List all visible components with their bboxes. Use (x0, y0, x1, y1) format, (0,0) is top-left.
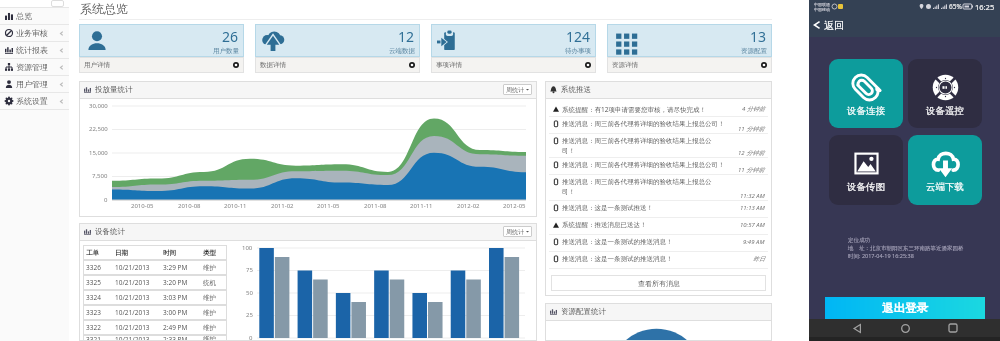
staticText: 维护 (203, 324, 216, 332)
staticText: 3322 (86, 323, 101, 332)
staticText: 用户管理 (16, 79, 48, 89)
staticText: 资源管理 (16, 62, 48, 72)
staticText: 设备连接 (847, 105, 885, 117)
button[interactable]: 系统提醒：有12项申请需要您审核，请尽快完成！ (549, 102, 768, 117)
button[interactable]: Recents (944, 319, 962, 337)
staticText: 用户详情 (84, 61, 110, 69)
staticText: 10/21/2013 (115, 263, 150, 272)
button[interactable]: 总览 (0, 8, 69, 24)
button[interactable]: 13 (607, 24, 772, 73)
button[interactable]: 资源管理 (0, 59, 69, 75)
button[interactable]: Back (848, 319, 866, 337)
staticText: 2:49 PM (163, 323, 188, 332)
staticText: 总览 (16, 11, 32, 21)
staticText: 返回 (824, 19, 844, 32)
staticText: 3:29 PM (163, 263, 188, 272)
staticText: 4 分钟前 (742, 105, 765, 113)
button[interactable]: 查看所有消息 (551, 275, 766, 291)
staticText: 资源详情 (612, 61, 638, 69)
button[interactable]: 设备传图 (829, 135, 903, 205)
button[interactable]: 推送消息：周三前各代理将详细的验收结果上报总公 司！ (549, 134, 768, 158)
staticText: 维护 (203, 294, 216, 302)
staticText: 2012-05 (503, 202, 526, 210)
staticText: 15,000 (89, 149, 108, 157)
staticText: 设备遥控 (926, 105, 964, 117)
staticText: 中国移动 (814, 7, 830, 12)
button[interactable]: 周统计 (506, 226, 529, 237)
staticText: 3325 (86, 278, 101, 287)
button[interactable]: 26 (79, 24, 244, 73)
staticText: 50 (246, 289, 253, 297)
button[interactable]: 124 (431, 24, 596, 73)
staticText: 云端下载 (926, 181, 964, 193)
button[interactable]: 12 (255, 24, 420, 73)
staticText: 推送消息：周三前各代理将详细的验收结果上报总公司！ (562, 120, 765, 128)
staticText: 16:25 (975, 2, 995, 12)
staticText: 2011-11 (410, 202, 433, 210)
staticText: 25 (246, 311, 253, 319)
staticText: 2010-05 (131, 202, 154, 210)
staticText: 系统推送 (561, 85, 591, 94)
staticText: 系统提醒：有12项申请需要您审核，请尽快完成！ (562, 105, 740, 114)
staticText: 推送消息：这是一条测试的推送消息！ (562, 238, 741, 246)
button[interactable]: 统计报表 (0, 42, 69, 58)
staticText: 数据详情 (260, 61, 286, 69)
staticText: 9:49 AM (743, 238, 765, 246)
staticText: 资源配置 (741, 47, 767, 55)
staticText: 投放量统计 (95, 85, 133, 94)
staticText: 类型 (203, 249, 216, 257)
button[interactable]: 云端下载 (908, 135, 982, 205)
staticText: 统计报表 (16, 45, 48, 55)
staticText: 时间: 2017-04-19 16:25:38 (848, 252, 914, 260)
staticText: 22,500 (89, 125, 108, 133)
button[interactable]: 推送消息：周三前各代理将详细的验收结果上报总公司！ (549, 158, 768, 175)
staticText: 周统计 (506, 86, 524, 94)
button[interactable]: 系统提醒：推送消息已送达！ (549, 218, 768, 235)
button[interactable]: 用户管理 (0, 76, 69, 92)
button[interactable]: 推送消息：周三前各代理将详细的验收结果上报总公 司！ (549, 175, 768, 201)
staticText: 10/21/2013 (115, 278, 150, 287)
staticText: 2011-05 (317, 202, 340, 210)
staticText: 11:13 AM (740, 204, 765, 212)
button[interactable]: 退出登录 (825, 297, 985, 319)
staticText: 设备统计 (95, 227, 125, 236)
button[interactable]: 推送消息：这是一条测试推送！ (549, 201, 768, 218)
button[interactable]: 推送消息：周三前各代理将详细的验收结果上报总公司！ (549, 117, 768, 134)
staticText: 10/21/2013 (115, 335, 150, 341)
button[interactable]: 设备连接 (829, 59, 903, 128)
button[interactable]: 推送消息：这是一条测试的推送消息！ (549, 235, 768, 252)
staticText: 系统设置 (16, 96, 48, 106)
staticText: 11 分钟前 (738, 166, 765, 174)
staticText: 推送消息：周三前各代理将详细的验收结果上报总公 司！ (562, 137, 765, 155)
staticText: 云端数据 (389, 47, 415, 55)
staticText: 待办事项 (565, 47, 591, 55)
button[interactable]: 推送消息：这是一条测试的推送消息！ (549, 252, 768, 269)
staticText: 10/21/2013 (115, 293, 150, 302)
staticText: 统机 (203, 279, 216, 287)
staticText: 2010-08 (178, 202, 201, 210)
staticText: 日期 (115, 249, 128, 257)
button[interactable]: 返回 (813, 13, 1000, 37)
staticText: 定位成功 (848, 237, 870, 244)
staticText: 2011-02 (271, 202, 294, 210)
button[interactable]: 周统计 (506, 84, 529, 95)
staticText: 0 (104, 196, 108, 204)
staticText: 维护 (203, 264, 216, 272)
staticText: 系统提醒：推送消息已送达！ (562, 221, 738, 229)
staticText: 2:33 PM (163, 335, 188, 341)
staticText: 维护 (203, 309, 216, 317)
staticText: 12 (398, 27, 415, 46)
staticText: 2011-08 (364, 202, 387, 210)
staticText: 13 (750, 27, 767, 46)
staticText: 7,500 (92, 172, 108, 180)
staticText: 推送消息：周三前各代理将详细的验收结果上报总公司！ (562, 161, 765, 169)
button[interactable]: 业务审核 (0, 25, 69, 41)
staticText: 3324 (86, 293, 101, 302)
button[interactable]: 系统设置 (0, 93, 69, 109)
button[interactable]: 设备遥控 (908, 59, 982, 128)
staticText: 100 (242, 244, 253, 252)
staticText: 3:00 PM (163, 308, 188, 317)
staticText: 30,000 (89, 102, 108, 110)
staticText: 3:20 PM (163, 278, 188, 287)
button[interactable]: Home (896, 319, 914, 337)
